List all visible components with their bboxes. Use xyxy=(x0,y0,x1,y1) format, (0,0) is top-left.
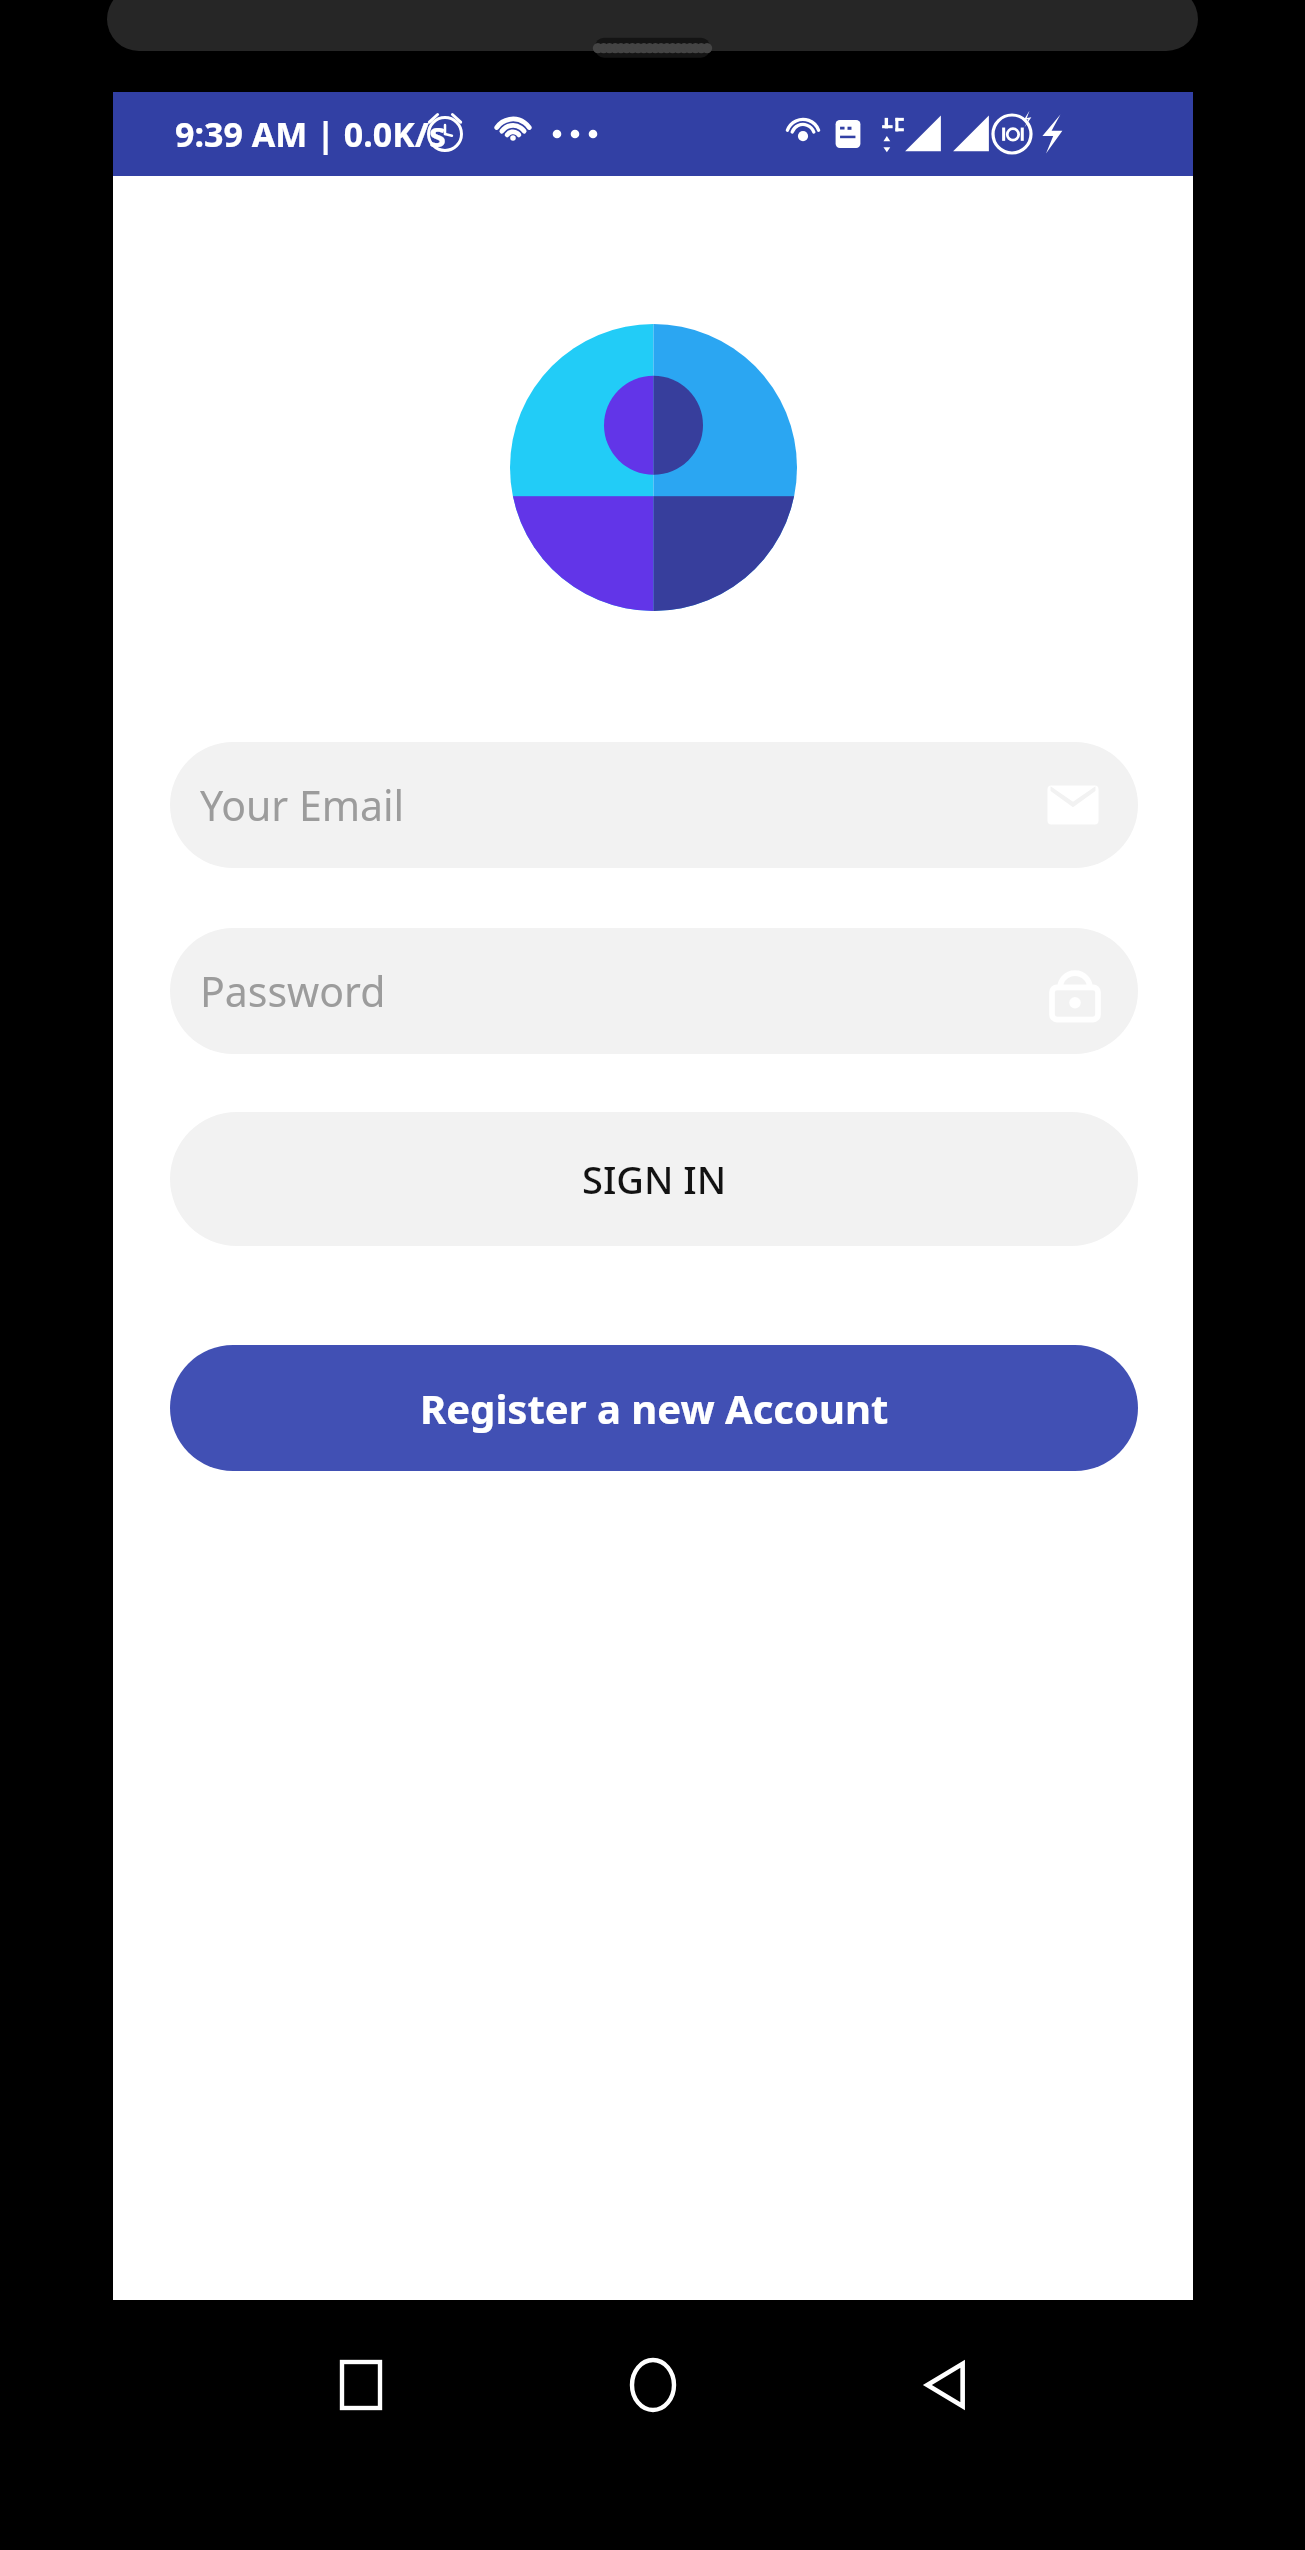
other: Profile avatar xyxy=(510,324,797,611)
staticText: Password xyxy=(200,963,386,1019)
button[interactable]: SIGN IN xyxy=(170,1112,1138,1246)
button[interactable]: Register a new Account xyxy=(170,1345,1138,1471)
button[interactable]: Home xyxy=(563,2300,743,2470)
button[interactable]: Recent apps xyxy=(271,2300,451,2470)
staticText: Your Email xyxy=(200,777,405,833)
button[interactable]: Your Email xyxy=(170,742,1138,868)
staticText: 9:39 AM | 0.0K/s xyxy=(175,111,446,157)
staticText: SIGN IN xyxy=(582,1153,727,1205)
button[interactable]: Back xyxy=(855,2300,1035,2470)
button[interactable]: Password xyxy=(170,928,1138,1054)
staticText: Register a new Account xyxy=(420,1381,889,1435)
